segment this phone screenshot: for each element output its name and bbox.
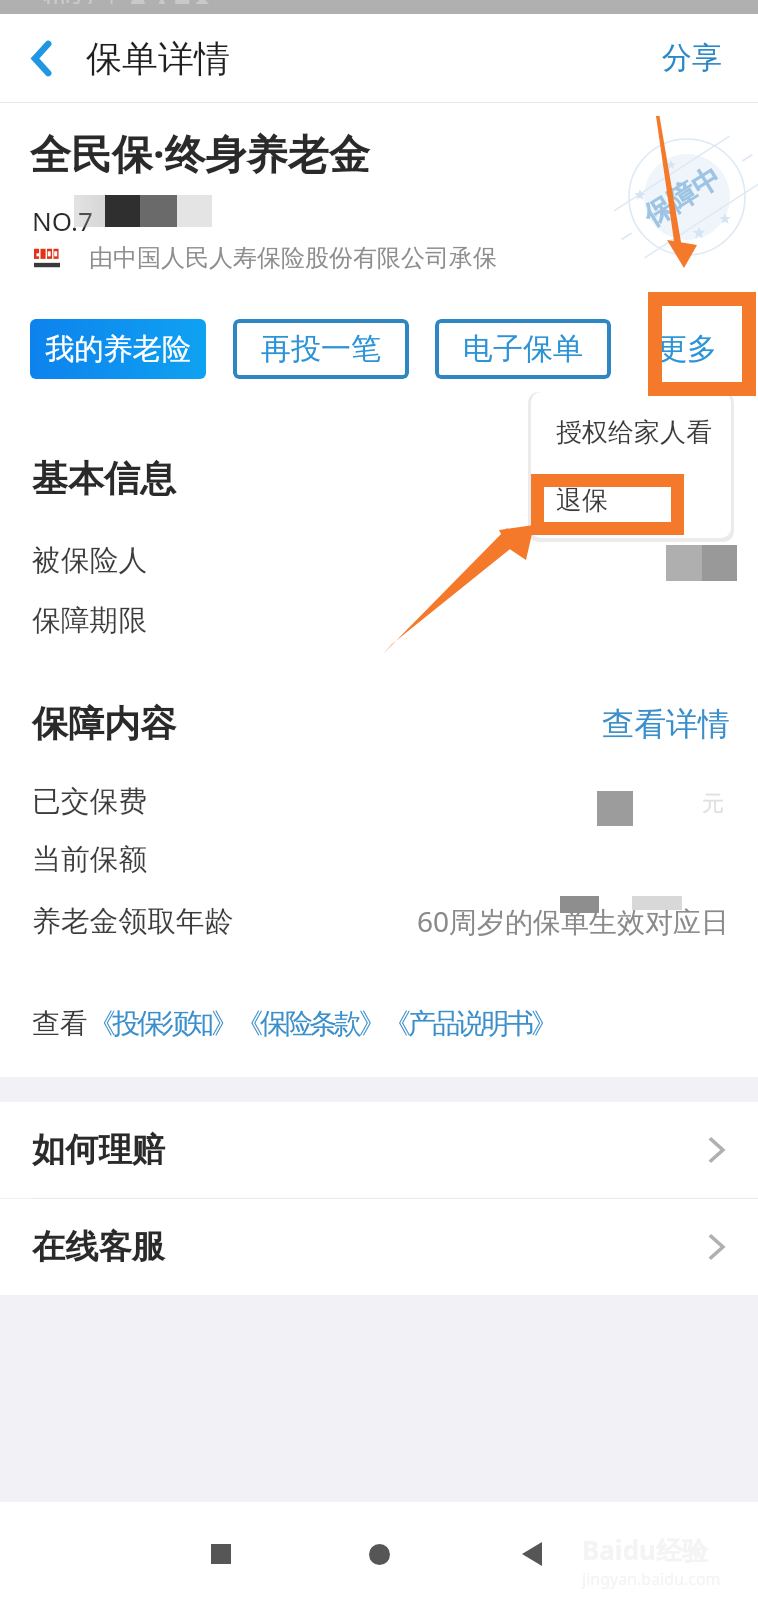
staticText: 退保 <box>556 484 608 517</box>
staticText: 授权给家人看 <box>556 416 712 449</box>
staticText: ● ▲ ■ ◆ <box>130 0 210 4</box>
staticText: 在线客服 <box>32 1226 165 1268</box>
staticText: 养老金领取年龄 <box>32 903 234 939</box>
staticText: 查看 <box>32 1006 88 1041</box>
staticText: 再投一笔 <box>261 330 381 368</box>
button[interactable]: Back <box>492 1514 572 1594</box>
staticText: 全民保·终身养老金 <box>30 125 370 181</box>
button[interactable]: 退保 <box>556 484 608 517</box>
staticText: 被保险人 <box>32 542 148 578</box>
staticText: 保单详情 <box>86 36 230 81</box>
staticText: 更多 <box>657 330 717 368</box>
staticText: 保障内容 <box>32 701 176 746</box>
button[interactable]: 授权给家人看 <box>556 416 712 449</box>
staticText: 60周岁的保单生效对应日 <box>417 902 730 940</box>
staticText: 《投保须知》《保险条款》《产品说明书》 <box>88 1006 556 1041</box>
staticText: 保障中 <box>637 159 727 233</box>
staticText: | <box>106 0 118 4</box>
staticText: NO.7 <box>32 203 93 238</box>
button[interactable]: Recents <box>181 1514 261 1594</box>
staticText: 当前保额 <box>32 841 148 877</box>
button[interactable]: 更多 <box>637 319 737 379</box>
button[interactable]: 在线客服 <box>0 1199 758 1295</box>
staticText: 分享 <box>662 39 722 77</box>
staticText: 保障期限 <box>32 602 148 638</box>
staticText: jingyan.baidu.com <box>582 1568 721 1590</box>
staticText: 基本信息 <box>32 456 176 501</box>
button[interactable]: 我的养老险 <box>30 319 206 379</box>
staticText: Baidu经验 <box>582 1532 708 1568</box>
staticText: 10:32 <box>42 0 94 4</box>
button[interactable]: 分享 <box>630 14 758 102</box>
button[interactable]: 再投一笔 <box>233 319 409 379</box>
staticText: 我的养老险 <box>45 331 191 368</box>
button[interactable]: Back <box>0 14 82 102</box>
staticText: 元 <box>702 790 724 818</box>
staticText: 由中国人民人寿保险股份有限公司承保 <box>89 243 497 273</box>
staticText: 查看详情 <box>602 704 730 744</box>
button[interactable]: Home <box>339 1514 419 1594</box>
button[interactable]: 如何理赔 <box>0 1102 758 1198</box>
staticText: 如何理赔 <box>32 1129 165 1171</box>
button[interactable]: 查看详情 <box>602 704 730 744</box>
button[interactable]: 电子保单 <box>435 319 611 379</box>
staticText: 电子保单 <box>463 330 583 368</box>
staticText: 已交保费 <box>32 783 148 819</box>
